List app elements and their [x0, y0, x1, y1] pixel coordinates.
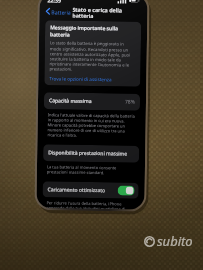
- staticText: Messaggio importante sulla batteria: [50, 24, 136, 39]
- staticText: 78%: [125, 98, 135, 106]
- button[interactable]: Batteria: [44, 6, 72, 17]
- staticText: Disponibilità prestazioni massime: [48, 149, 127, 157]
- staticText: Per ridurre l'usura della batteria, iPho…: [46, 200, 134, 210]
- button[interactable]: Caricamento ottimizzato: [42, 181, 139, 199]
- button[interactable]: Disponibilità prestazioni massime: [43, 144, 139, 163]
- staticText: Stato e carica della batteria: [72, 6, 142, 19]
- staticText: Caricamento ottimizzato: [48, 186, 106, 194]
- staticText: Trova le opzioni di assistenza: [49, 75, 112, 82]
- staticText: subito: [157, 232, 193, 250]
- button[interactable]: Capacità massima: [44, 92, 140, 111]
- staticText: La tua batteria al momento consente pres…: [47, 164, 135, 176]
- staticText: Batteria: [51, 8, 71, 16]
- staticText: Indica l'attuale valore di capacità dell…: [47, 112, 136, 139]
- button[interactable]: Messaggio importante sulla batteria: [44, 20, 141, 87]
- staticText: Lo stato della batteria è peggiorato in …: [49, 40, 136, 73]
- staticText: Capacità massima: [49, 97, 92, 105]
- staticText: 22:39: [47, 0, 62, 3]
- button[interactable]: Caricamento ottimizzato attivo: [117, 185, 135, 196]
